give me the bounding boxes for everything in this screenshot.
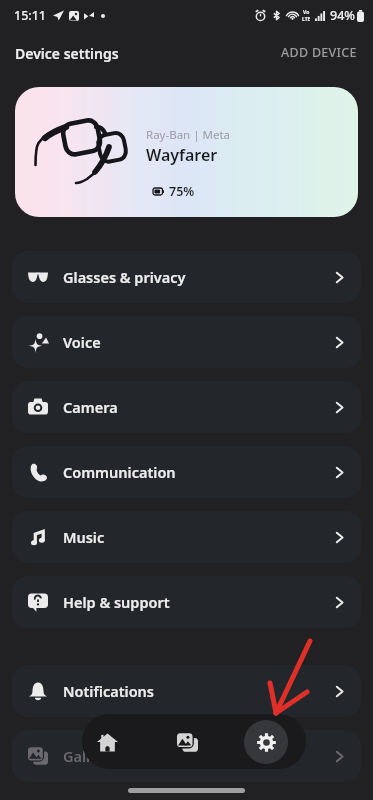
staticText: 75% bbox=[169, 183, 195, 200]
button[interactable]: Communication bbox=[12, 446, 361, 498]
button[interactable]: Voice bbox=[12, 316, 361, 368]
button[interactable]: Music bbox=[12, 511, 361, 563]
staticText: Gallery bbox=[63, 746, 113, 766]
button[interactable]: Settings bbox=[244, 720, 288, 764]
staticText: Help & support bbox=[63, 592, 170, 612]
staticText: Music bbox=[63, 527, 105, 547]
button[interactable]: Camera bbox=[12, 381, 361, 433]
staticText: Wayfarer bbox=[146, 144, 218, 166]
button[interactable]: Glasses & privacy bbox=[12, 251, 361, 303]
staticText: ADD DEVICE bbox=[281, 44, 357, 61]
staticText: Camera bbox=[63, 397, 118, 417]
button[interactable]: Home bbox=[83, 718, 131, 766]
staticText: 94% bbox=[330, 7, 355, 24]
staticText: Device settings bbox=[15, 44, 119, 63]
staticText: Notifications bbox=[63, 681, 155, 701]
button[interactable]: Ray-Ban | Meta bbox=[15, 87, 358, 217]
staticText: Vo bbox=[303, 9, 310, 16]
staticText: Glasses & privacy bbox=[63, 267, 186, 287]
button[interactable]: ADD DEVICE bbox=[277, 40, 361, 67]
button[interactable]: Notifications bbox=[12, 665, 361, 717]
staticText: Ray-Ban | Meta bbox=[146, 127, 231, 143]
button[interactable]: Help & support bbox=[12, 576, 361, 628]
staticText: Voice bbox=[63, 332, 101, 352]
button[interactable]: Gallery bbox=[163, 718, 211, 766]
staticText: Communication bbox=[63, 462, 176, 482]
staticText: 15:11 bbox=[14, 7, 47, 24]
button[interactable]: Gallery bbox=[12, 730, 361, 782]
staticText: LTE bbox=[302, 16, 311, 23]
